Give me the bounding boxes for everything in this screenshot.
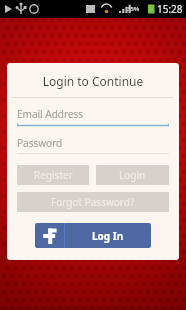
button[interactable]: Email Address (17, 107, 169, 128)
staticText: Log In (92, 229, 124, 243)
button[interactable]: Register (17, 165, 89, 185)
button[interactable]: Password (17, 136, 169, 154)
button[interactable]: Facebook (35, 223, 151, 248)
staticText: Login (119, 168, 146, 182)
staticText: Register (34, 168, 73, 182)
staticText: Password (17, 136, 63, 150)
button[interactable]: Forgot Password? (17, 192, 169, 212)
button[interactable]: Login (96, 165, 169, 185)
staticText: 35% (127, 5, 140, 13)
staticText: Forgot Password? (51, 195, 135, 209)
staticText: Email Address (17, 107, 84, 121)
other: Facebook (35, 223, 65, 248)
staticText: 15:28 (157, 2, 183, 16)
staticText: Login to Continue (7, 73, 179, 89)
